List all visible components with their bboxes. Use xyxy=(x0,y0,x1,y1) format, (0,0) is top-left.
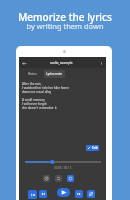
button[interactable]: A-B repeat xyxy=(55,175,62,182)
button[interactable]: Rewind xyxy=(39,190,47,198)
staticText: by writing them down xyxy=(26,21,104,31)
button[interactable]: Fast forward xyxy=(75,190,83,198)
button[interactable]: Loop xyxy=(67,175,74,182)
button[interactable]: Play xyxy=(57,188,70,197)
button[interactable]: Repeat xyxy=(87,190,95,198)
button[interactable]: More options xyxy=(97,59,105,67)
button[interactable]: Lyrics note xyxy=(44,70,65,78)
staticText: Lyrics note xyxy=(46,72,63,76)
staticText: Edit xyxy=(92,146,98,150)
button[interactable]: Back xyxy=(20,59,28,67)
button[interactable]: Edit xyxy=(86,145,99,151)
staticText: 00:05 / 00:15 xyxy=(54,166,72,170)
button[interactable]: Notes xyxy=(26,70,39,78)
button[interactable]: Playback speed xyxy=(43,175,50,182)
staticText: After the rain, I watched her ride her b… xyxy=(22,82,69,110)
staticText: Memorize the lyrics xyxy=(18,10,112,24)
button[interactable]: Previous track xyxy=(28,190,37,199)
staticText: Notes xyxy=(28,72,37,76)
button[interactable]: Seek xyxy=(25,159,101,165)
staticText: audio_example xyxy=(50,61,73,65)
